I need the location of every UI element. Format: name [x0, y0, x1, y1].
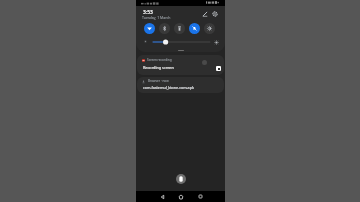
button[interactable]: Auto rotate: [204, 23, 215, 34]
staticText: Browser · now: [148, 79, 169, 83]
button[interactable]: Edit tiles: [200, 9, 210, 19]
button[interactable]: App icon: [202, 60, 207, 65]
button[interactable]: Lock: [176, 174, 186, 184]
button[interactable]: Bluetooth: [159, 23, 170, 34]
button[interactable]: Wi‑Fi: [144, 23, 155, 34]
staticText: Tuesday, 1 March: [142, 15, 171, 20]
button[interactable]: Flashlight: [174, 23, 185, 34]
button[interactable]: Home: [176, 191, 186, 202]
button[interactable]: Screen recording: [137, 55, 224, 75]
staticText: Screen recording: [147, 58, 172, 62]
staticText: com.fastemul_ktone.com.apk: [143, 85, 194, 90]
button[interactable]: Recent apps: [195, 191, 205, 202]
button[interactable]: Browser · now: [137, 77, 224, 93]
button[interactable]: Back: [157, 191, 167, 202]
staticText: Recording screen: [143, 65, 174, 70]
button[interactable]: Do not disturb: [189, 23, 200, 34]
staticText: 3:53: [143, 9, 153, 16]
button[interactable]: Settings: [210, 9, 220, 19]
button[interactable]: Stop recording: [216, 66, 221, 71]
